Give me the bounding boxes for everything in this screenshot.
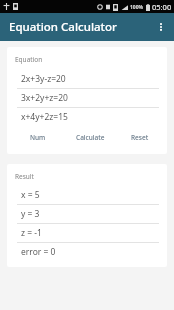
staticText: z = -1 <box>21 227 42 239</box>
staticText: 3x+2y+z=20 <box>21 92 68 104</box>
staticText: Equation <box>15 55 43 64</box>
button[interactable]: 3x+2y+z=20 <box>7 89 167 107</box>
staticText: 05:00 <box>152 2 172 12</box>
button[interactable]: z = -1 <box>7 224 167 242</box>
staticText: 2x+3y-z=20 <box>21 73 66 85</box>
button[interactable]: Calculate <box>61 129 120 145</box>
button[interactable]: More options <box>148 14 174 40</box>
staticText: Num <box>30 133 46 142</box>
staticText: x = 5 <box>21 189 40 201</box>
button[interactable]: Reset <box>120 129 159 145</box>
staticText: Reset <box>131 133 149 142</box>
staticText: error = 0 <box>21 246 56 258</box>
staticText: 100% <box>130 4 144 11</box>
button[interactable]: x = 5 <box>7 186 167 204</box>
button[interactable]: Num <box>15 129 61 145</box>
button[interactable]: x+4y+2z=15 <box>7 108 167 126</box>
button[interactable]: 2x+3y-z=20 <box>7 70 167 88</box>
button[interactable]: y = 3 <box>7 205 167 223</box>
staticText: Result <box>15 172 34 181</box>
staticText: Equation Calculator <box>9 19 117 35</box>
staticText: x+4y+2z=15 <box>21 111 68 123</box>
button[interactable]: error = 0 <box>7 243 167 261</box>
staticText: y = 3 <box>21 208 40 220</box>
staticText: Calculate <box>76 133 105 142</box>
